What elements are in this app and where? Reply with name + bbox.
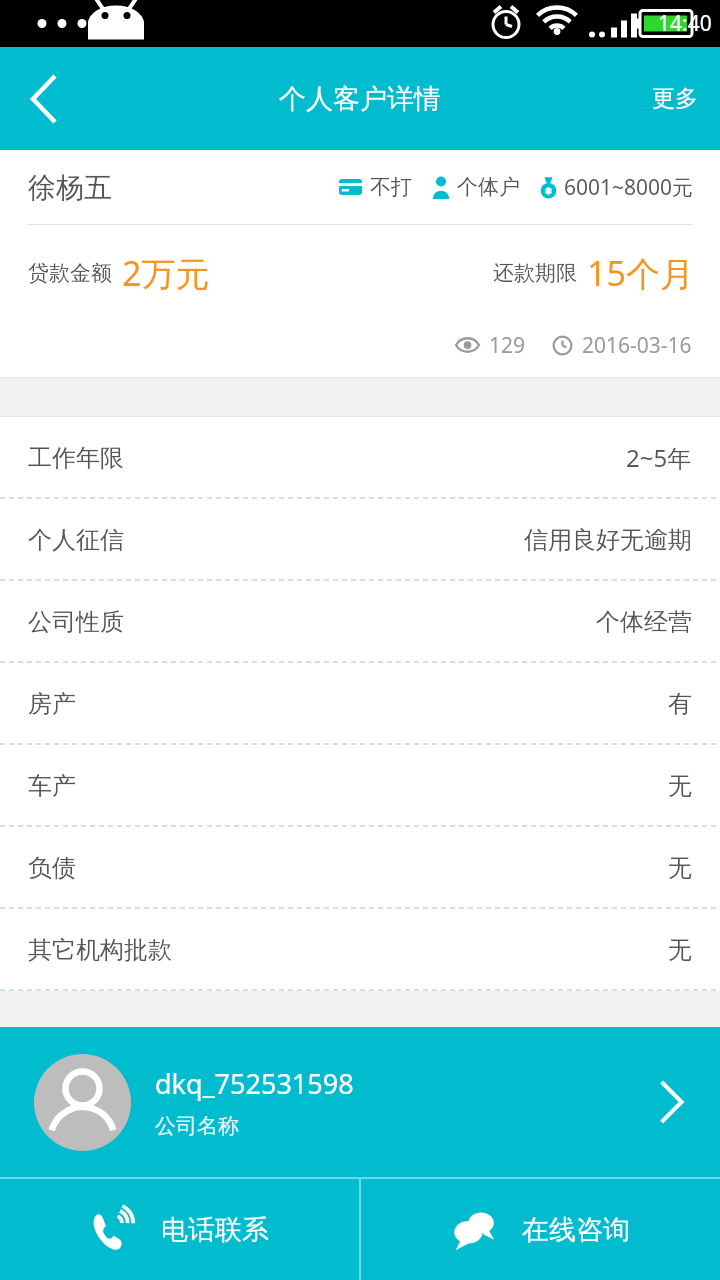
staticText: 徐杨五: [28, 170, 112, 205]
staticText: 工作年限: [28, 443, 124, 473]
button[interactable]: 车产: [0, 745, 720, 826]
button[interactable]: Back: [0, 59, 80, 139]
staticText: 公司名称: [155, 1113, 239, 1139]
staticText: 个人客户详情: [279, 82, 441, 116]
button[interactable]: 在线咨询: [361, 1179, 720, 1280]
staticText: 无: [668, 935, 692, 965]
staticText: 无: [668, 771, 692, 801]
staticText: 个体户: [457, 174, 520, 200]
staticText: 贷款金额: [28, 260, 112, 286]
button[interactable]: 负债: [0, 827, 720, 908]
button[interactable]: dkq_752531598: [0, 1027, 720, 1177]
staticText: 15个月: [587, 250, 694, 296]
staticText: 有: [668, 689, 692, 719]
button[interactable]: 个人征信: [0, 499, 720, 580]
staticText: 负债: [28, 853, 76, 883]
staticText: 129: [489, 331, 526, 360]
staticText: 电话联系: [161, 1213, 269, 1247]
staticText: 车产: [28, 771, 76, 801]
staticText: 个体经营: [596, 607, 692, 637]
button[interactable]: 工作年限: [0, 417, 720, 498]
staticText: 个人征信: [28, 525, 124, 555]
staticText: 14:40: [658, 9, 712, 38]
staticText: 信用良好无逾期: [524, 525, 692, 555]
staticText: 2~5年: [626, 441, 692, 474]
staticText: 房产: [28, 689, 76, 719]
staticText: 2万元: [122, 250, 210, 296]
staticText: 不打: [370, 174, 412, 200]
staticText: 还款期限: [493, 260, 577, 286]
staticText: 无: [668, 853, 692, 883]
staticText: 2016-03-16: [582, 331, 692, 360]
button[interactable]: 房产: [0, 663, 720, 744]
button[interactable]: 其它机构批款: [0, 909, 720, 990]
button[interactable]: 更多: [630, 68, 720, 129]
staticText: 公司性质: [28, 607, 124, 637]
button[interactable]: 公司性质: [0, 581, 720, 662]
staticText: 6001~8000元: [564, 173, 694, 202]
staticText: 其它机构批款: [28, 935, 172, 965]
staticText: 在线咨询: [522, 1213, 630, 1247]
button[interactable]: 电话联系: [0, 1179, 359, 1280]
staticText: dkq_752531598: [155, 1065, 354, 1102]
